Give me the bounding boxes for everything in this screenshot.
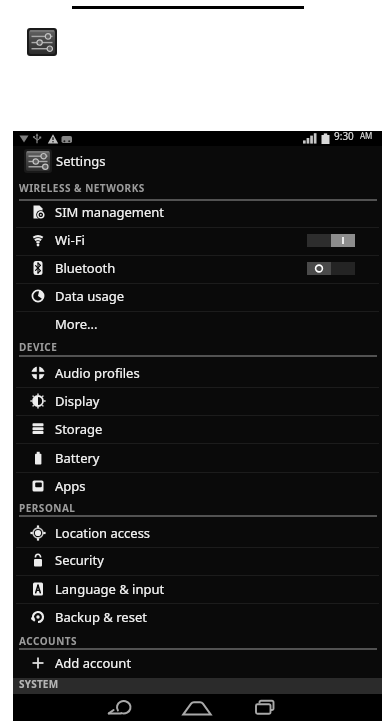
button[interactable]: Data usage: [13, 282, 382, 310]
button[interactable]: [307, 262, 355, 275]
button[interactable]: Security: [13, 546, 382, 574]
button[interactable]: Wi-Fi: [13, 226, 382, 254]
button[interactable]: Location access: [13, 519, 382, 547]
staticText: Data usage: [55, 287, 125, 305]
staticText: Display: [55, 392, 100, 410]
button[interactable]: More...: [13, 310, 382, 338]
button[interactable]: Bluetooth: [13, 254, 382, 282]
button[interactable]: Backup & reset: [13, 603, 382, 631]
staticText: Backup & reset: [55, 608, 147, 626]
button[interactable]: [27, 28, 57, 56]
staticText: DEVICE: [19, 340, 58, 354]
button[interactable]: Storage: [13, 415, 382, 443]
staticText: Location access: [55, 524, 151, 542]
staticText: Battery: [55, 449, 100, 467]
button[interactable]: Apps: [13, 472, 382, 500]
staticText: Settings: [56, 152, 106, 170]
staticText: Security: [55, 551, 104, 569]
button[interactable]: [183, 699, 211, 717]
button[interactable]: [105, 699, 133, 717]
staticText: WIRELESS & NETWORKS: [19, 181, 145, 195]
button[interactable]: Display: [13, 387, 382, 415]
button[interactable]: Language & input: [13, 575, 382, 603]
staticText: 9:30: [334, 129, 354, 143]
staticText: SYSTEM: [19, 677, 59, 691]
button[interactable]: Add account: [13, 649, 382, 677]
button[interactable]: Battery: [13, 444, 382, 472]
button[interactable]: [251, 699, 279, 717]
staticText: Audio profiles: [55, 364, 140, 382]
staticText: Apps: [55, 477, 86, 495]
staticText: Bluetooth: [55, 259, 116, 277]
staticText: PERSONAL: [19, 501, 76, 515]
staticText: Language & input: [55, 580, 165, 598]
staticText: Add account: [55, 654, 132, 672]
staticText: SIM management: [55, 203, 165, 221]
staticText: ACCOUNTS: [19, 634, 78, 648]
staticText: More...: [55, 315, 98, 333]
button[interactable]: Settings: [13, 146, 382, 176]
button[interactable]: [307, 234, 355, 247]
button[interactable]: Audio profiles: [13, 359, 382, 387]
staticText: AM: [360, 130, 373, 141]
staticText: Storage: [55, 420, 103, 438]
staticText: Wi-Fi: [55, 231, 85, 249]
button[interactable]: SIM management: [13, 198, 382, 226]
